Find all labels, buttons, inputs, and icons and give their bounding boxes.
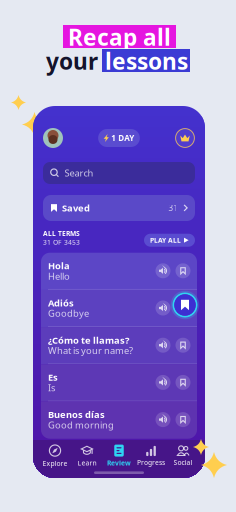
staticText: Search xyxy=(64,167,93,179)
staticText: Hola xyxy=(48,259,70,272)
staticText: Buenos días xyxy=(48,408,105,421)
button[interactable]: Social xyxy=(167,443,199,469)
staticText: ¿Cómo te llamas? xyxy=(48,334,129,346)
button[interactable]: Learn xyxy=(71,443,103,469)
staticText: 1 DAY xyxy=(111,133,134,143)
staticText: Hello xyxy=(48,270,70,282)
button[interactable]: Play audio xyxy=(153,332,173,358)
staticText: Is xyxy=(48,381,55,394)
staticText: Adiós xyxy=(48,297,74,309)
staticText: Goodbye xyxy=(48,307,89,319)
button[interactable]: Explore xyxy=(39,443,71,469)
button[interactable]: Saved xyxy=(43,195,195,221)
button[interactable]: Save xyxy=(173,407,193,433)
button[interactable]: Play audio xyxy=(153,407,173,433)
button[interactable]: Profile xyxy=(43,128,63,148)
button[interactable]: Save xyxy=(173,258,193,284)
staticText: Saved xyxy=(62,202,90,214)
staticText: Social xyxy=(173,458,192,467)
button[interactable]: Progress xyxy=(135,443,167,469)
staticText: ALL TERMS xyxy=(43,229,80,238)
button[interactable]: Search xyxy=(43,162,195,184)
button[interactable]: Saved xyxy=(171,291,199,319)
staticText: lessons xyxy=(105,46,188,76)
button[interactable]: Play audio xyxy=(153,369,173,395)
staticText: PLAY ALL xyxy=(150,236,181,245)
staticText: Recap all xyxy=(68,22,171,52)
button[interactable]: PLAY ALL xyxy=(144,234,195,247)
staticText: Explore xyxy=(42,459,67,468)
button[interactable]: 1 DAY xyxy=(98,129,140,147)
staticText: 31 xyxy=(168,203,178,213)
staticText: Learn xyxy=(77,459,96,467)
staticText: 31 OF 3453 xyxy=(43,238,80,247)
staticText: What is your name? xyxy=(48,344,133,357)
button[interactable]: Play audio xyxy=(153,295,173,321)
button[interactable]: Play audio xyxy=(153,258,173,284)
button[interactable]: Save xyxy=(173,369,193,395)
staticText: Es xyxy=(48,371,58,383)
button[interactable]: Premium xyxy=(175,128,195,148)
staticText: Progress xyxy=(137,458,165,467)
staticText: Review xyxy=(107,459,131,467)
button[interactable]: Saved xyxy=(173,295,193,321)
button[interactable]: Review xyxy=(103,443,135,469)
button[interactable]: Save xyxy=(173,332,193,358)
staticText: your xyxy=(46,46,98,76)
staticText: Good morning xyxy=(48,419,114,431)
